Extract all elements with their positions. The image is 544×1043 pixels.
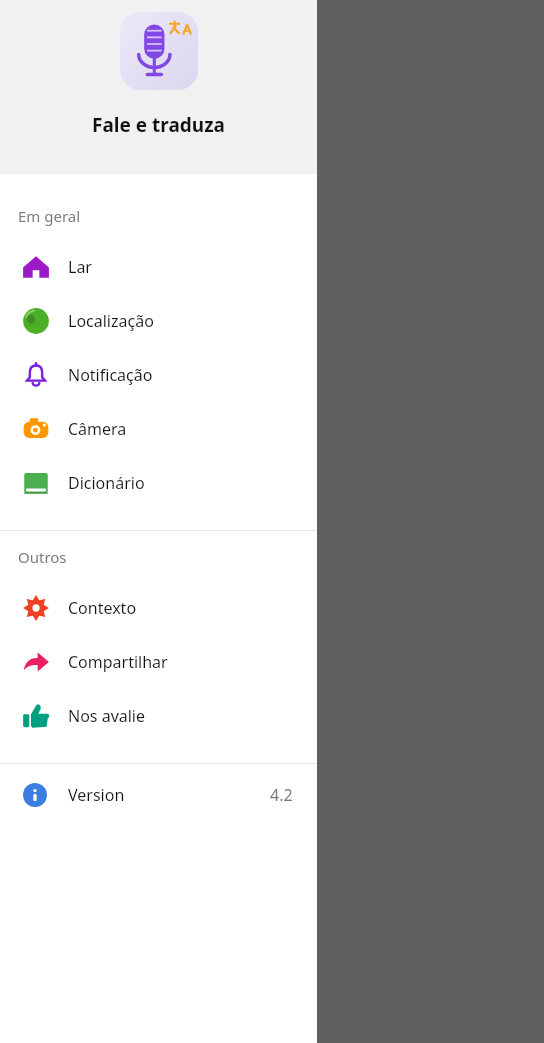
staticText: Compartilhar <box>68 651 168 673</box>
button[interactable]: Contexto <box>0 581 317 635</box>
button[interactable]: Localização <box>0 294 317 348</box>
button[interactable]: Dicionário <box>0 456 317 510</box>
button[interactable]: Notificação <box>0 348 317 402</box>
staticText: Localização <box>68 310 154 332</box>
staticText: Câmera <box>68 418 127 440</box>
staticText: Dicionário <box>68 472 145 494</box>
staticText: Contexto <box>68 597 137 619</box>
staticText: Nos avalie <box>68 705 146 727</box>
button[interactable]: Nos avalie <box>0 689 317 743</box>
button[interactable]: Version <box>0 764 317 826</box>
staticText: Toque no microfone para falar <box>190 490 404 510</box>
staticText: Lar <box>68 256 92 278</box>
staticText: 4.2 <box>270 784 293 806</box>
button[interactable]: Câmera <box>0 402 317 456</box>
staticText: Outros <box>18 547 67 567</box>
staticText: Em geral <box>18 206 81 226</box>
staticText: Version <box>68 784 125 806</box>
staticText: Fale e traduza <box>92 112 225 138</box>
staticText: Notificação <box>68 364 153 386</box>
button[interactable]: Compartilhar <box>0 635 317 689</box>
button[interactable]: Lar <box>0 240 317 294</box>
